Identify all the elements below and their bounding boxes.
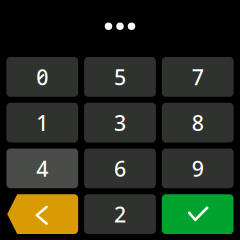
- button[interactable]: 0: [6, 57, 78, 97]
- button[interactable]: 6: [84, 148, 156, 188]
- staticText: 4: [36, 154, 48, 182]
- button[interactable]: 5: [84, 57, 156, 97]
- button[interactable]: 2: [84, 194, 156, 234]
- button[interactable]: 7: [162, 57, 233, 97]
- staticText: 0: [36, 63, 48, 91]
- staticText: 6: [114, 154, 126, 182]
- button[interactable]: 8: [162, 103, 233, 143]
- staticText: 3: [114, 108, 126, 137]
- staticText: 5: [114, 63, 126, 91]
- staticText: 9: [192, 154, 204, 182]
- button[interactable]: 4: [6, 148, 78, 188]
- button[interactable]: Delete: [6, 194, 78, 234]
- staticText: 1: [36, 108, 48, 137]
- staticText: 2: [114, 200, 126, 228]
- button[interactable]: Confirm: [162, 194, 233, 234]
- button[interactable]: 1: [6, 103, 78, 143]
- button[interactable]: 3: [84, 103, 156, 143]
- staticText: 8: [192, 108, 204, 137]
- staticText: 7: [192, 63, 204, 91]
- button[interactable]: 9: [162, 148, 233, 188]
